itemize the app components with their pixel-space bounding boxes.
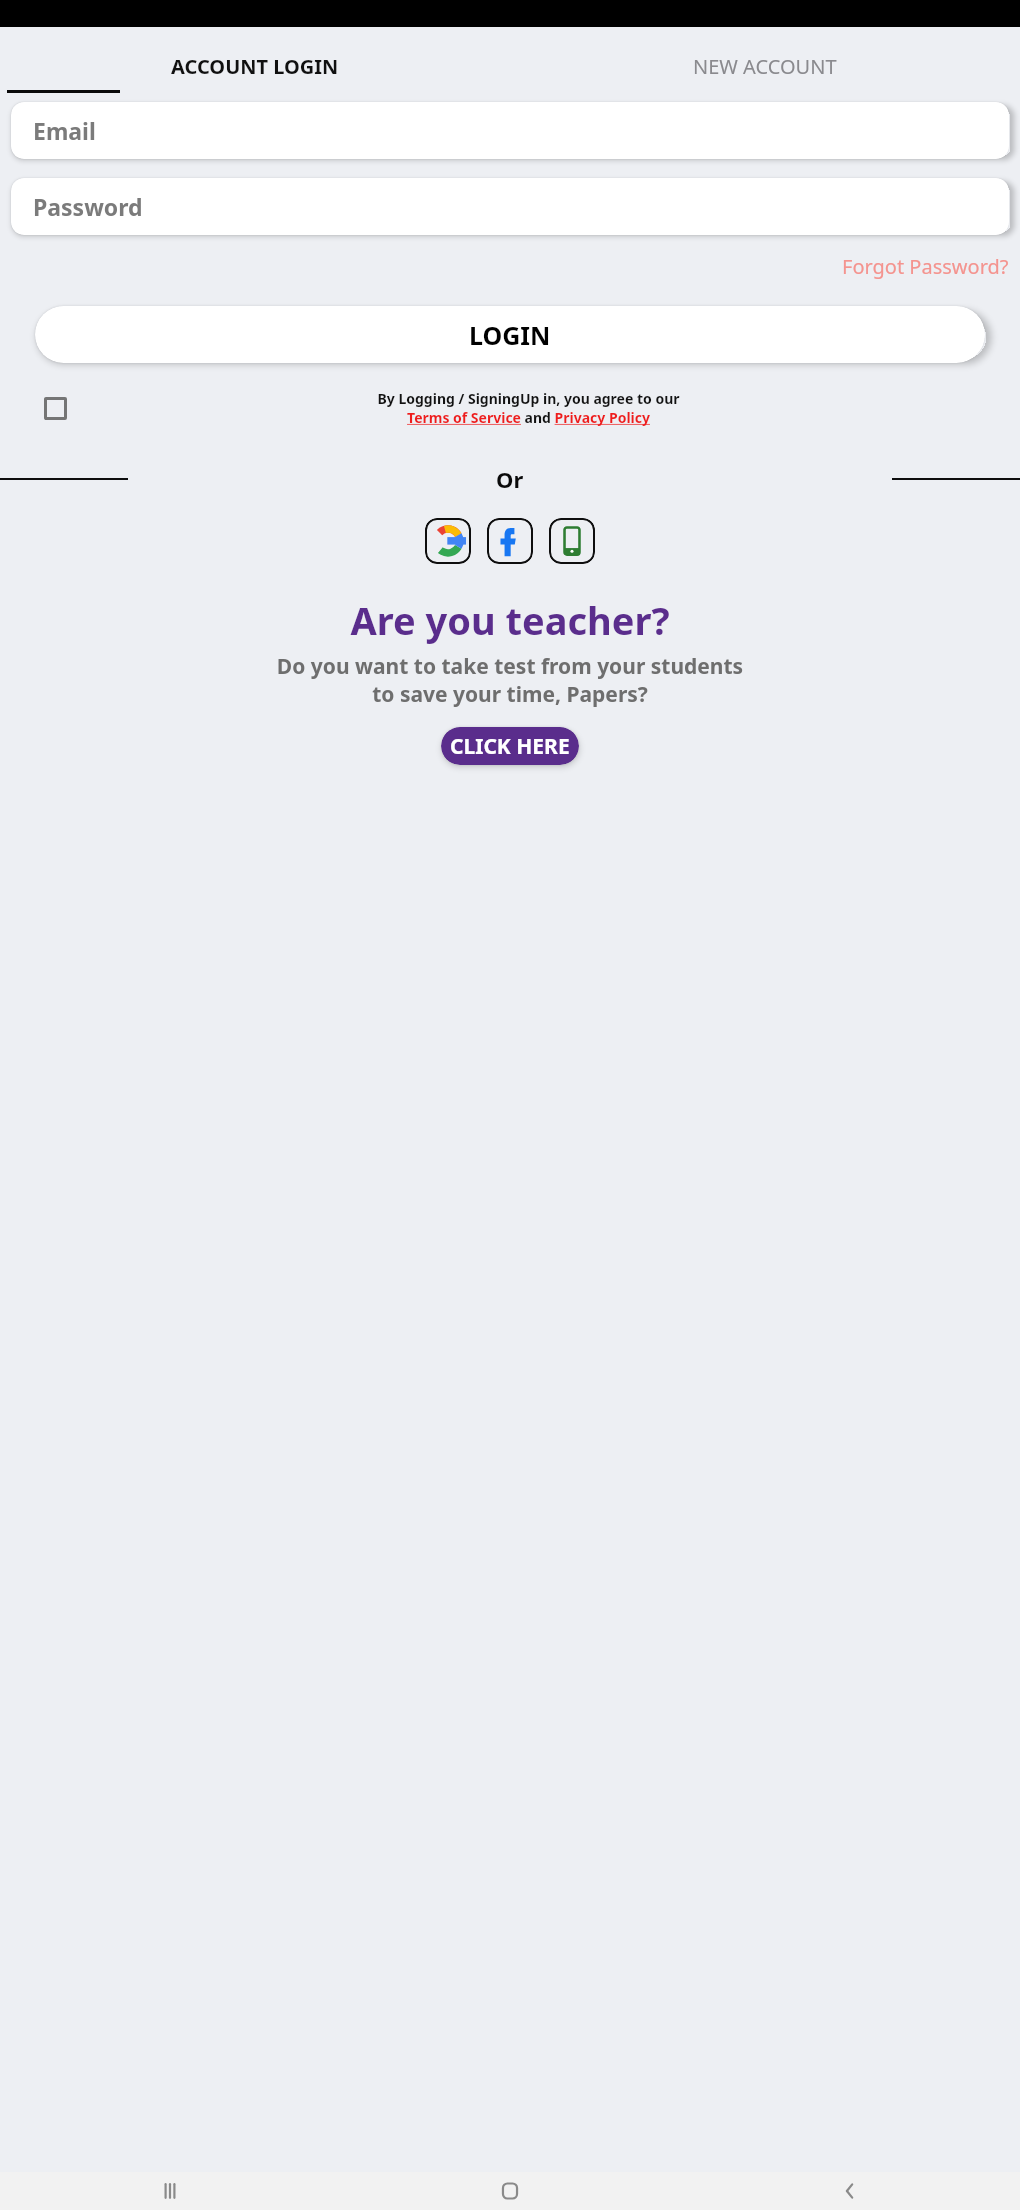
staticText: Password (33, 191, 143, 222)
button[interactable]: Password (11, 178, 1009, 235)
button[interactable]: NEW ACCOUNT (510, 53, 1020, 90)
staticText: By Logging / SigningUp in, you agree to … (377, 389, 680, 427)
button[interactable]: LOGIN (35, 306, 985, 363)
button[interactable]: Sign in with Facebook (487, 518, 533, 564)
staticText: ACCOUNT LOGIN (171, 53, 339, 80)
button[interactable]: ACCOUNT LOGIN (0, 53, 510, 90)
button[interactable]: Agree to terms checkbox (40, 393, 70, 423)
button[interactable]: Home (340, 2172, 680, 2210)
button[interactable]: Sign in with Google (425, 518, 471, 564)
button[interactable]: Sign in with phone (549, 518, 595, 564)
button[interactable]: Email (11, 102, 1009, 159)
staticText: NEW ACCOUNT (693, 53, 837, 80)
button[interactable]: CLICK HERE (441, 727, 579, 765)
staticText: Are you teacher? (0, 594, 1020, 646)
staticText: Do you want to take test from your stude… (12, 652, 1008, 708)
staticText: Or (496, 464, 524, 494)
staticText: CLICK HERE (450, 732, 570, 761)
button[interactable]: Back (680, 2172, 1020, 2210)
staticText: Email (33, 115, 96, 146)
staticText: Forgot Password? (842, 253, 1009, 280)
staticText: LOGIN (469, 318, 551, 352)
button[interactable]: Forgot Password? (831, 249, 1020, 284)
button[interactable]: Recent apps (0, 2172, 340, 2210)
